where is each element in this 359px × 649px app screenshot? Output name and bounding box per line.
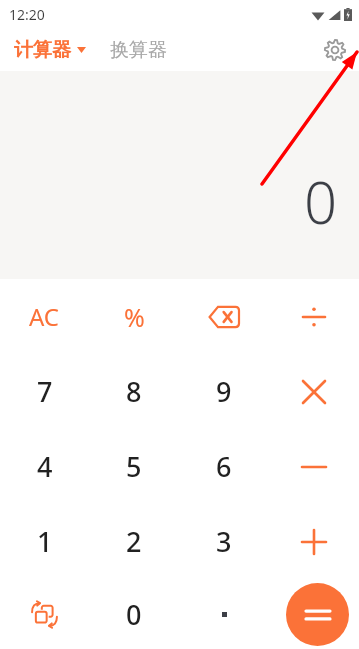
- button[interactable]: 1: [0, 504, 89, 579]
- staticText: 2: [126, 523, 142, 560]
- staticText: 换算器: [110, 38, 167, 62]
- staticText: AC: [29, 300, 60, 333]
- button[interactable]: Equals: [286, 583, 349, 646]
- staticText: 计算器: [14, 38, 71, 62]
- staticText: 4: [37, 448, 53, 485]
- staticText: %: [124, 300, 145, 334]
- button[interactable]: 4: [0, 429, 89, 504]
- button[interactable]: 2: [89, 504, 179, 579]
- staticText: 1: [37, 523, 53, 560]
- button[interactable]: 0: [89, 579, 179, 649]
- staticText: 5: [126, 448, 142, 485]
- button[interactable]: 9: [179, 354, 269, 429]
- staticText: 0: [126, 596, 142, 633]
- staticText: 9: [216, 373, 232, 410]
- button[interactable]: 8: [89, 354, 179, 429]
- staticText: 3: [216, 523, 232, 560]
- button[interactable]: Multiply: [269, 354, 359, 429]
- button[interactable]: Backspace: [179, 279, 269, 354]
- staticText: 6: [216, 448, 232, 485]
- staticText: 7: [37, 373, 53, 410]
- button[interactable]: 7: [0, 354, 89, 429]
- button[interactable]: Percent: [89, 279, 179, 354]
- button[interactable]: 3: [179, 504, 269, 579]
- staticText: 12:20: [9, 5, 45, 24]
- staticText: 8: [126, 373, 142, 410]
- button[interactable]: 5: [89, 429, 179, 504]
- button[interactable]: AC: [0, 279, 89, 354]
- button[interactable]: Decimal point: [179, 579, 269, 649]
- button[interactable]: Plus: [269, 504, 359, 579]
- button[interactable]: 计算器: [0, 34, 92, 66]
- button[interactable]: 换算器: [106, 34, 171, 66]
- button[interactable]: Divide: [269, 279, 359, 354]
- button[interactable]: Minus: [269, 429, 359, 504]
- staticText: 0: [303, 162, 337, 241]
- button[interactable]: Settings: [319, 34, 351, 66]
- button[interactable]: 6: [179, 429, 269, 504]
- button[interactable]: Convert: [0, 579, 89, 649]
